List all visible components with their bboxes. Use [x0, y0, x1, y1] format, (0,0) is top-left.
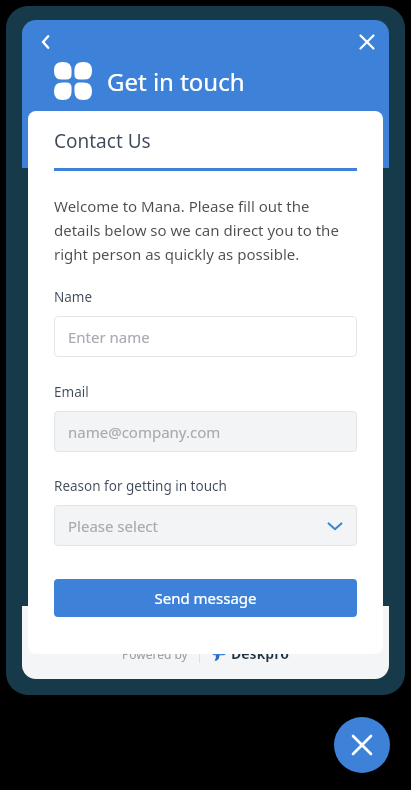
button[interactable]: Close chat: [334, 717, 390, 773]
staticText: Email: [54, 383, 89, 401]
staticText: Reason for getting in touch: [54, 477, 227, 495]
button[interactable]: Close: [347, 22, 387, 62]
staticText: Get in touch: [107, 65, 245, 98]
staticText: Deskpro: [231, 644, 289, 663]
staticText: Send message: [154, 588, 257, 608]
staticText: Powered by: [122, 646, 188, 662]
staticText: Contact Us: [54, 128, 151, 154]
staticText: name@company.com: [68, 422, 221, 442]
staticText: Name: [54, 288, 93, 306]
staticText: Welcome to Mana. Please fill out the det…: [54, 196, 357, 264]
button[interactable]: Send message: [54, 579, 357, 617]
button[interactable]: Back: [26, 22, 66, 62]
button[interactable]: name@company.com: [54, 411, 357, 452]
staticText: Enter name: [68, 327, 150, 347]
button[interactable]: Enter name: [54, 316, 357, 357]
staticText: Please select: [68, 516, 158, 536]
button[interactable]: Please select: [54, 505, 357, 546]
